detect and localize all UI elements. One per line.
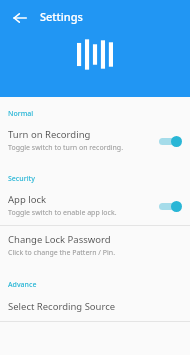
staticText: Turn on Recording <box>8 128 91 141</box>
staticText: Click to change the Pattern / Pin. <box>8 248 116 258</box>
staticText: Advance <box>8 280 37 290</box>
staticText: App lock <box>8 193 47 206</box>
button[interactable]: App lock <box>0 187 190 225</box>
button[interactable]: Select Recording Source <box>0 293 190 321</box>
staticText: Toggle switch to turn on recording. <box>8 143 124 153</box>
button[interactable]: Back <box>6 4 34 32</box>
staticText: Settings <box>40 9 83 24</box>
staticText: Normal <box>8 109 34 119</box>
button[interactable]: Toggle <box>156 198 182 214</box>
button[interactable]: Toggle <box>156 133 182 149</box>
button[interactable]: Change Lock Password <box>0 226 190 266</box>
staticText: Security <box>8 174 35 184</box>
staticText: Change Lock Password <box>8 233 111 246</box>
staticText: Select Recording Source <box>8 300 116 313</box>
button[interactable]: Turn on Recording <box>0 122 190 160</box>
staticText: Toggle switch to enable app lock. <box>8 208 117 218</box>
